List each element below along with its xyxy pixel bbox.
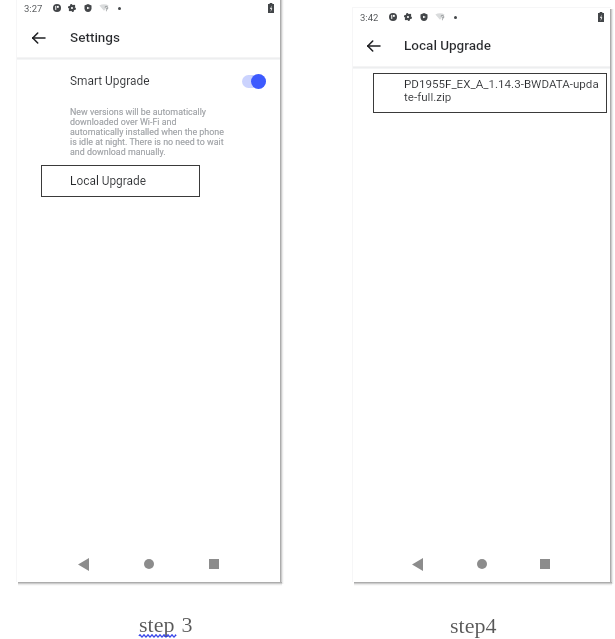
staticText: New versions will be automatically downl… (70, 107, 224, 157)
staticText: Settings (70, 29, 120, 45)
button[interactable]: Recent apps (203, 553, 225, 575)
staticText: Local Upgrade (70, 174, 147, 188)
staticText: step (139, 612, 175, 636)
staticText: Local Upgrade (404, 37, 491, 53)
button[interactable]: Back (72, 553, 94, 575)
staticText: 3 (176, 612, 193, 636)
button[interactable]: Local Upgrade (41, 165, 200, 197)
button[interactable]: PD1955F_EX_A_1.14.3-BWDATA-upda te-full.… (373, 73, 607, 113)
button[interactable]: Home (471, 553, 493, 575)
staticText: step4 (450, 613, 497, 637)
button[interactable]: Back (362, 35, 384, 57)
staticText: Smart Upgrade (70, 74, 150, 88)
button[interactable]: Back (406, 553, 428, 575)
button[interactable]: Home (138, 553, 160, 575)
staticText: 3:42 (360, 12, 379, 23)
staticText: 3:27 (24, 3, 43, 14)
staticText: PD1955F_EX_A_1.14.3-BWDATA-upda te-full.… (404, 77, 599, 104)
button[interactable]: Recent apps (534, 553, 556, 575)
button[interactable]: Back (27, 27, 49, 49)
button[interactable]: Smart Upgrade (17, 67, 280, 95)
